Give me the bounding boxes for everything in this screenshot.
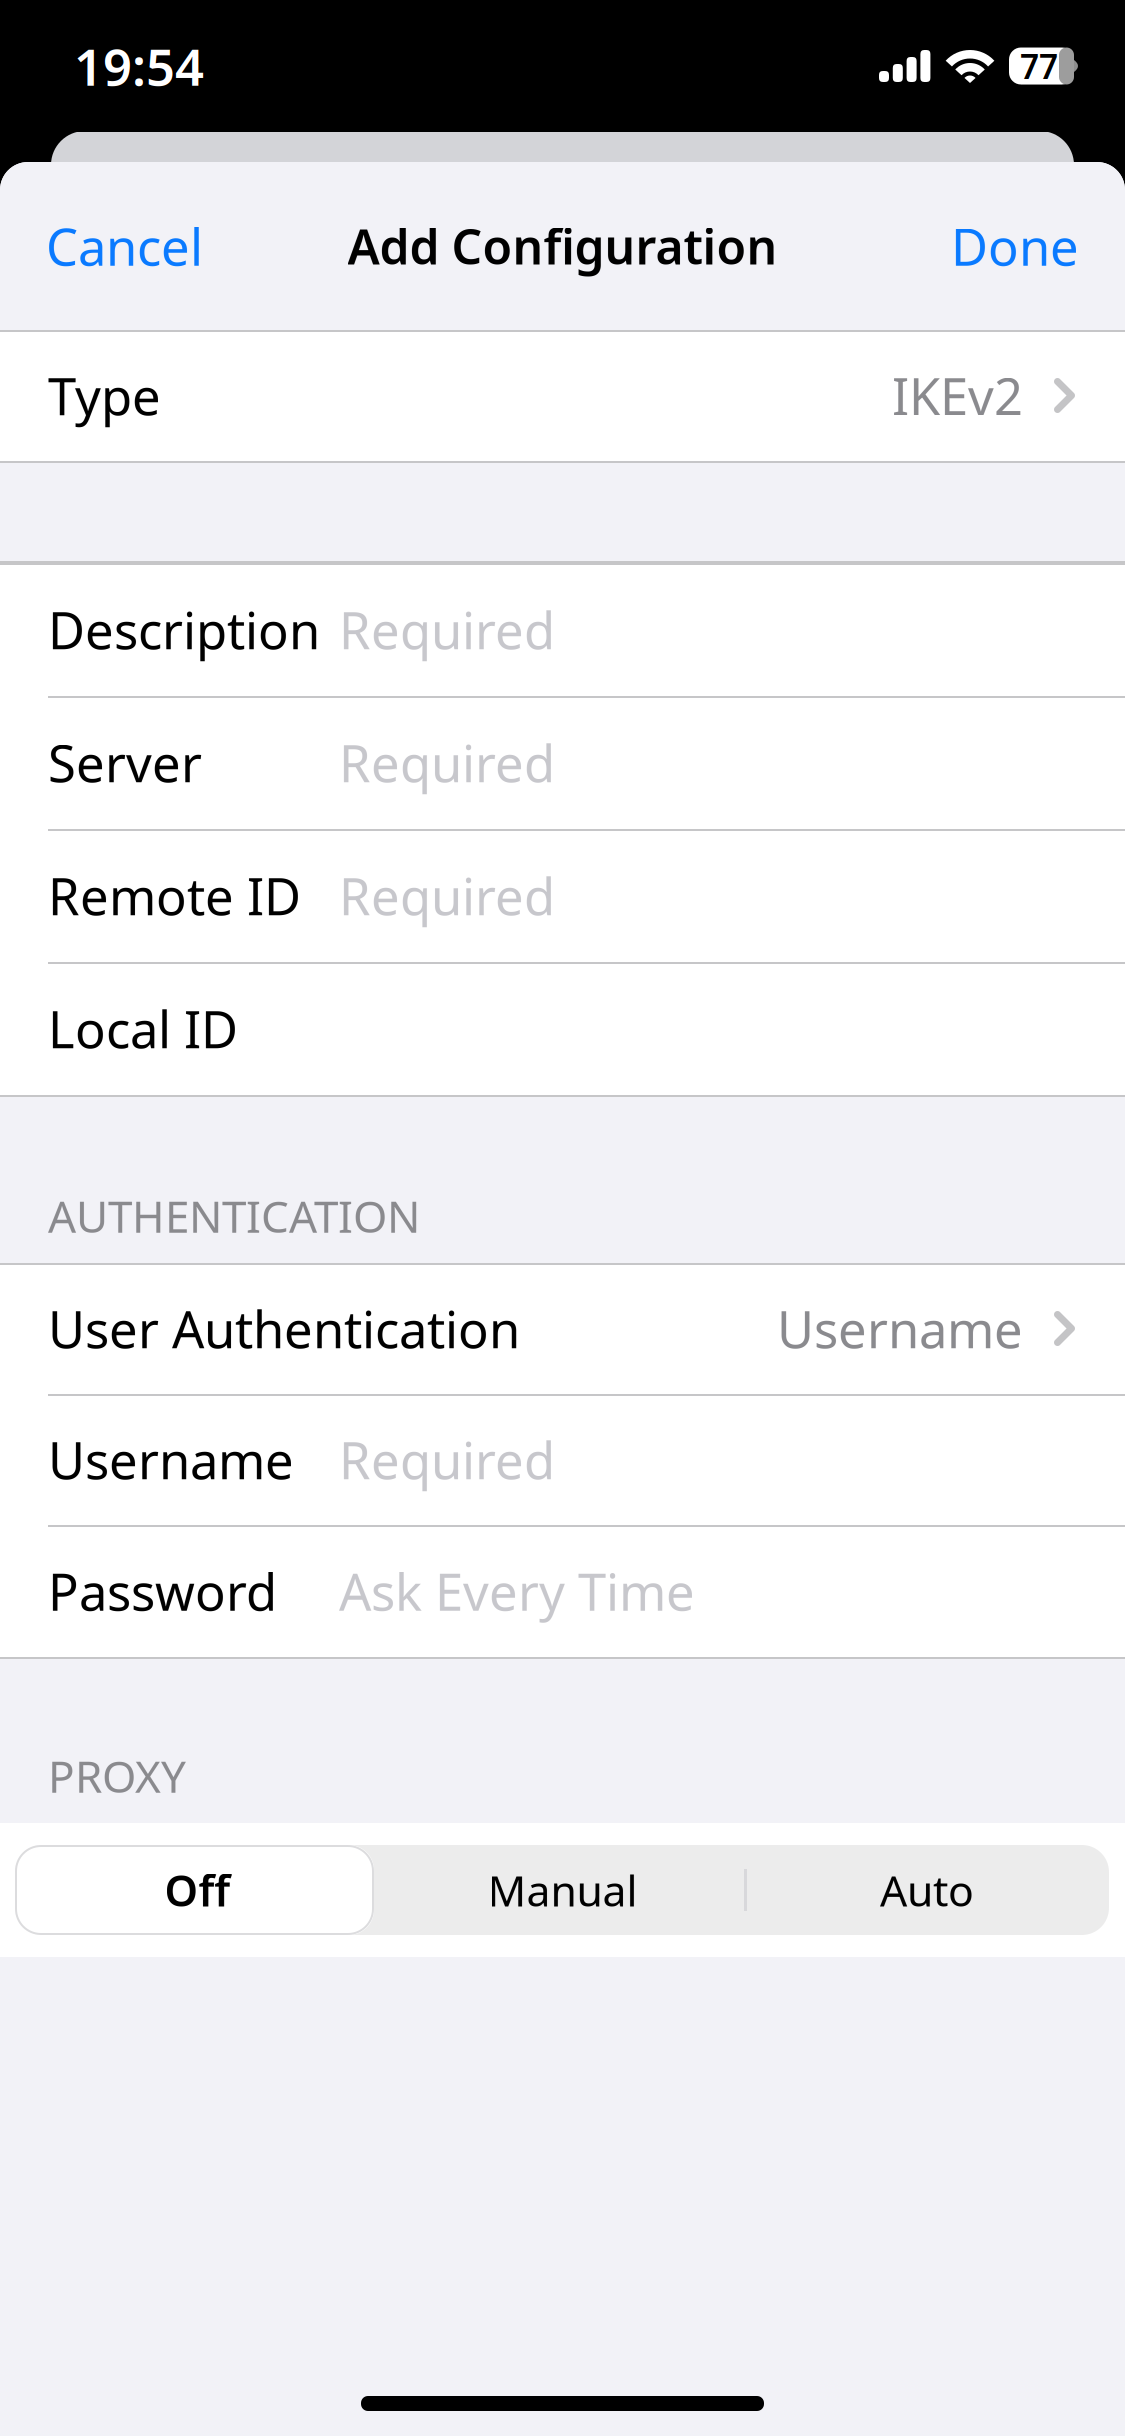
staticText: IKEv2 xyxy=(892,362,1023,429)
staticText: Ask Every Time xyxy=(339,1557,695,1625)
staticText: Required xyxy=(339,596,555,663)
staticText: Required xyxy=(339,862,555,929)
button[interactable]: Description xyxy=(0,563,1125,696)
staticText: Username xyxy=(777,1295,1023,1362)
staticText: Local ID xyxy=(48,995,238,1062)
staticText: Required xyxy=(339,729,555,796)
staticText: Off xyxy=(164,1862,230,1918)
button[interactable]: User Authentication xyxy=(0,1263,1125,1394)
staticText: Username xyxy=(48,1426,294,1493)
button[interactable]: Server xyxy=(0,696,1125,829)
button[interactable]: Username xyxy=(0,1394,1125,1525)
staticText: 19:54 xyxy=(74,32,204,100)
staticText: Required xyxy=(339,1426,555,1493)
staticText: Password xyxy=(48,1557,277,1625)
button[interactable]: Done xyxy=(921,184,1125,308)
button[interactable]: Password xyxy=(0,1525,1125,1657)
staticText: PROXY xyxy=(48,1747,186,1805)
staticText: Done xyxy=(951,212,1079,280)
staticText: Server xyxy=(48,729,202,796)
staticText: Type xyxy=(48,362,161,429)
button[interactable]: Auto xyxy=(745,1831,1109,1949)
staticText: Remote ID xyxy=(48,862,301,929)
staticText: Manual xyxy=(487,1862,637,1918)
button[interactable]: Type xyxy=(0,330,1125,461)
staticText: Description xyxy=(48,596,320,663)
button[interactable]: Local ID xyxy=(0,962,1125,1095)
staticText: User Authentication xyxy=(48,1295,520,1362)
staticText: Add Configuration xyxy=(347,214,777,278)
button[interactable]: Cancel xyxy=(0,184,233,308)
staticText: Auto xyxy=(880,1862,974,1918)
button[interactable]: Manual xyxy=(380,1831,745,1949)
button[interactable]: Remote ID xyxy=(0,829,1125,962)
staticText: Cancel xyxy=(46,212,203,280)
staticText: AUTHENTICATION xyxy=(48,1187,420,1245)
button[interactable]: Off xyxy=(15,1831,380,1949)
staticText: 77 xyxy=(1020,44,1058,88)
